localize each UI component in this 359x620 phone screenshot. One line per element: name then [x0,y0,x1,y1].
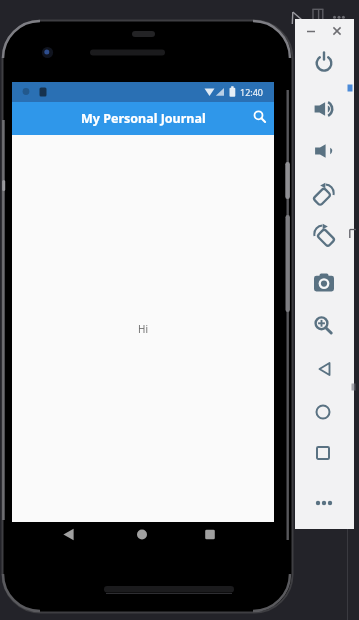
button[interactable] [305,176,343,214]
button[interactable] [305,264,343,302]
staticText: My Personal Journal [81,110,206,127]
button[interactable] [305,484,343,522]
button[interactable] [305,90,343,128]
button[interactable] [196,522,224,548]
staticText: Hi [138,322,148,336]
button[interactable] [304,393,342,431]
button[interactable] [305,217,343,255]
staticText: 12:40 [240,86,264,98]
button[interactable] [304,306,342,344]
button[interactable] [55,522,83,548]
button[interactable] [305,132,343,170]
button[interactable] [305,43,343,81]
button[interactable] [304,434,342,472]
button[interactable] [292,12,330,50]
button[interactable] [246,102,272,135]
button[interactable] [318,12,356,50]
button[interactable] [306,350,344,388]
button[interactable] [128,522,156,548]
